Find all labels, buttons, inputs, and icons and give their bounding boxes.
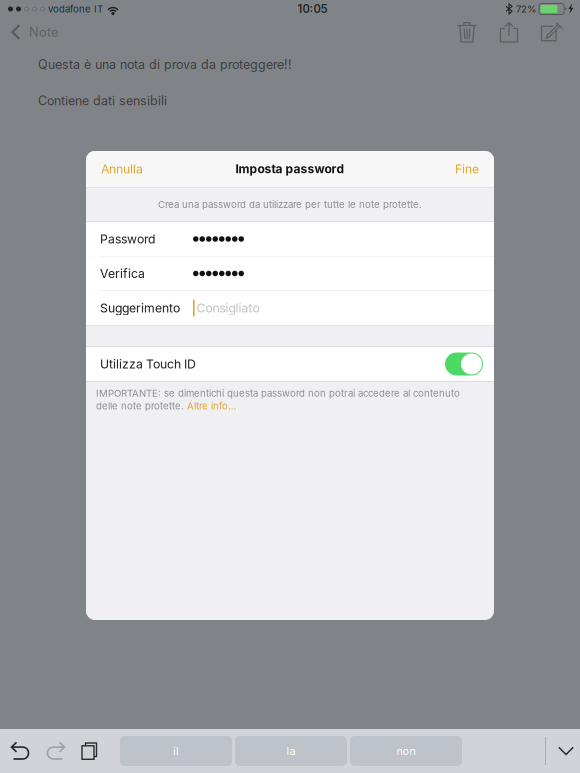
staticText: la (286, 744, 295, 758)
staticText: 72% (513, 3, 539, 15)
staticText: Password (100, 232, 155, 246)
staticText: delle note protette. (96, 400, 187, 412)
button[interactable]: Note (0, 18, 68, 46)
staticText: Contiene dati sensibili (38, 93, 167, 108)
staticText: Crea una password da utilizzare per tutt… (158, 199, 422, 210)
button[interactable]: Annulla (86, 151, 155, 187)
staticText: Altre info… (187, 400, 236, 412)
staticText: Questa è una nota di prova da proteggere… (38, 57, 292, 72)
button[interactable]: Redo (38, 729, 72, 773)
staticText: Imposta password (235, 162, 344, 176)
staticText: Annulla (101, 162, 143, 176)
staticText: Note (29, 24, 58, 40)
button[interactable]: Undo (4, 729, 38, 773)
button[interactable]: Fine (443, 151, 494, 187)
staticText: vodafone IT (45, 3, 106, 15)
staticText: Fine (455, 162, 479, 176)
button[interactable]: il (120, 736, 232, 766)
button[interactable]: Altre info… (187, 400, 236, 412)
button[interactable]: Hide keyboard (552, 729, 580, 773)
button[interactable]: Utilizza Touch ID (86, 347, 494, 381)
button[interactable]: Share (488, 18, 530, 46)
staticText: Verifica (100, 266, 145, 281)
staticText: Consigliato (197, 301, 260, 315)
button[interactable]: la (235, 736, 347, 766)
button[interactable]: non (350, 736, 462, 766)
button[interactable]: New note (530, 18, 572, 46)
staticText: il (173, 744, 179, 758)
staticText: Suggerimento (100, 301, 180, 315)
button[interactable]: Paste (72, 729, 106, 773)
staticText: Utilizza Touch ID (100, 357, 196, 371)
staticText: IMPORTANTE: se dimentichi questa passwor… (96, 387, 460, 399)
staticText: non (396, 744, 415, 758)
button[interactable]: Delete (446, 18, 488, 46)
staticText: 10:05 (297, 2, 327, 16)
